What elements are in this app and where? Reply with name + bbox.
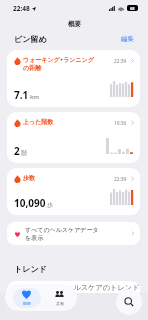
staticText: 歩: [47, 201, 53, 209]
button[interactable]: 歩数: [7, 168, 140, 215]
button[interactable]: ヘルスケアのトレンド: [7, 281, 140, 320]
button[interactable]: すべてのヘルスケアデータ: [7, 222, 140, 245]
staticText: トレンド: [14, 264, 47, 274]
staticText: ヘルスケアのトレンド: [66, 283, 140, 292]
staticText: ウォーキング+ランニング: [23, 56, 94, 64]
staticText: ピン留め: [14, 34, 47, 44]
staticText: 階: [21, 149, 27, 157]
staticText: 概要: [23, 301, 31, 306]
staticText: 22:48: [13, 4, 30, 13]
button[interactable]: 編集: [121, 35, 134, 43]
button[interactable]: 概要: [10, 284, 43, 311]
button[interactable]: 上った階数: [7, 112, 140, 163]
button[interactable]: 検索: [116, 289, 142, 315]
staticText: 22:39: [114, 176, 127, 183]
button[interactable]: 共有: [43, 284, 76, 311]
staticText: 10:36: [114, 120, 127, 127]
staticText: を表示: [25, 234, 44, 242]
staticText: 共有: [56, 301, 64, 306]
button[interactable]: ウォーキング+ランニング: [7, 50, 140, 107]
staticText: 10,090: [14, 196, 46, 210]
staticText: 7.1: [14, 88, 29, 102]
staticText: km: [30, 93, 40, 101]
staticText: 22:39: [114, 58, 127, 65]
staticText: の距離: [23, 64, 42, 72]
staticText: 2: [14, 144, 20, 158]
staticText: 編集: [121, 35, 134, 43]
staticText: 68: [130, 6, 135, 11]
staticText: 上った階数: [23, 118, 54, 126]
staticText: すべてのヘルスケアデータ: [25, 226, 99, 234]
staticText: 歩数: [23, 174, 35, 182]
staticText: 概要: [68, 20, 81, 28]
